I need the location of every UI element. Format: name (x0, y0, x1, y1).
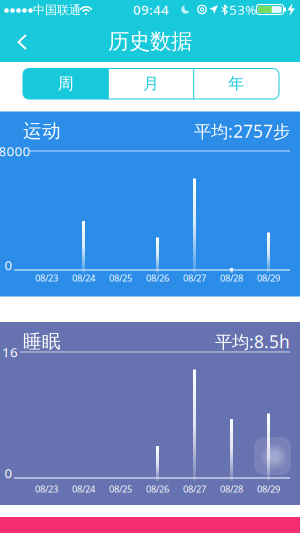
staticText: 08/26 (146, 272, 169, 284)
staticText: 08/27 (183, 272, 206, 284)
staticText: 运动 (23, 119, 61, 142)
staticText: 08/25 (109, 272, 132, 284)
staticText: 08/28 (220, 272, 243, 284)
staticText: 0 (4, 464, 12, 482)
staticText: 睡眠 (23, 330, 61, 353)
staticText: 08/23 (35, 483, 58, 495)
staticText: 08/23 (35, 272, 58, 284)
staticText: 月 (143, 74, 159, 94)
staticText: 08/29 (257, 272, 280, 284)
staticText: 中国联通 (33, 3, 81, 17)
staticText: 周 (58, 74, 74, 94)
staticText: 历史数据 (108, 28, 192, 55)
staticText: 53% (229, 1, 256, 18)
staticText: 08/28 (220, 483, 243, 495)
staticText: 0 (4, 256, 12, 274)
staticText: 08/24 (72, 272, 95, 284)
staticText: 平均:8.5h (215, 330, 290, 353)
staticText: 年 (228, 74, 244, 94)
staticText: 8000 (0, 142, 30, 160)
staticText: 平均:2757步 (194, 119, 290, 142)
staticText: 09:44 (133, 1, 169, 18)
staticText: 08/25 (109, 483, 132, 495)
staticText: 08/27 (183, 483, 206, 495)
staticText: 08/26 (146, 483, 169, 495)
staticText: 16 (2, 343, 18, 361)
staticText: 08/29 (257, 483, 280, 495)
staticText: 08/24 (72, 483, 95, 495)
